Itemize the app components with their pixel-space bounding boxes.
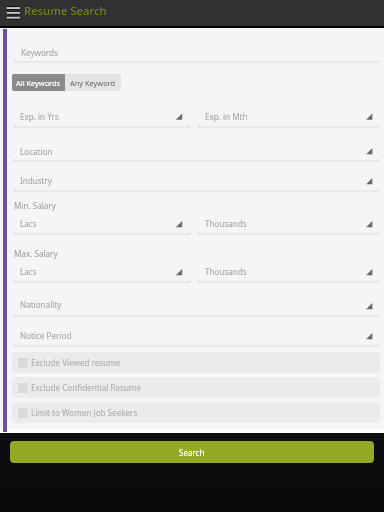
staticText: Search (179, 447, 205, 458)
button[interactable]: Lacs (20, 218, 37, 229)
button[interactable]: Exclude Confidential Resume (12, 377, 380, 398)
staticText: Max. Salary (14, 248, 58, 259)
staticText: Resume Search (24, 3, 107, 18)
staticText: Exclude Viewed resume (31, 357, 121, 368)
staticText: All Keywords (16, 78, 61, 88)
staticText: Limit to Women Job Seekers (31, 407, 138, 418)
button[interactable]: All Keywords (12, 74, 65, 91)
button[interactable]: Notice Period (20, 330, 72, 341)
button[interactable]: Exp. in Yrs (20, 111, 59, 122)
button[interactable]: Thousands (205, 266, 247, 277)
button[interactable]: Nationality (20, 299, 62, 310)
button[interactable]: Industry (20, 175, 52, 186)
button[interactable]: Exp. in Mth (205, 111, 248, 122)
button[interactable]: Search (10, 441, 374, 463)
button[interactable]: Location (20, 146, 53, 157)
button[interactable]: Open navigation menu (0, 0, 26, 26)
button[interactable]: Exclude Viewed resume (12, 352, 380, 373)
button[interactable]: Thousands (205, 218, 247, 229)
button[interactable]: Lacs (20, 266, 37, 277)
button[interactable]: Any Keyword (65, 74, 121, 91)
staticText: Min. Salary (14, 200, 56, 211)
staticText: Any Keyword (70, 78, 116, 88)
button[interactable]: Limit to Women Job Seekers (12, 402, 380, 423)
staticText: Exclude Confidential Resume (31, 382, 142, 393)
button[interactable]: Keywords (21, 47, 58, 58)
